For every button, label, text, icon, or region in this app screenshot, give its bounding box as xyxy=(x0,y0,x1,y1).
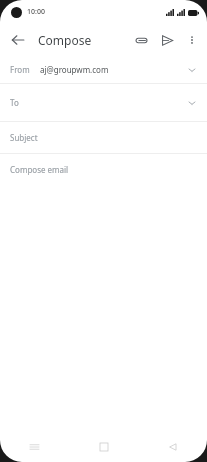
button[interactable]: Attach file xyxy=(128,27,154,53)
button[interactable]: Recent apps xyxy=(0,432,69,462)
staticText: To xyxy=(10,97,19,108)
button[interactable]: Compose email xyxy=(0,154,207,184)
staticText: aj@groupwm.com xyxy=(40,64,109,75)
staticText: Compose xyxy=(38,32,92,48)
staticText: Subject xyxy=(10,132,38,143)
button[interactable]: Back xyxy=(138,432,207,462)
button[interactable]: Send xyxy=(154,27,180,53)
button[interactable]: From xyxy=(0,56,207,83)
button[interactable]: More options xyxy=(180,28,204,52)
button[interactable]: Back xyxy=(4,26,32,54)
button[interactable]: Subject xyxy=(0,122,207,153)
staticText: Compose email xyxy=(10,164,69,175)
button[interactable]: To xyxy=(0,84,207,121)
button[interactable]: Home xyxy=(69,432,138,462)
staticText: 10:00 xyxy=(27,7,45,17)
staticText: From xyxy=(10,64,30,75)
